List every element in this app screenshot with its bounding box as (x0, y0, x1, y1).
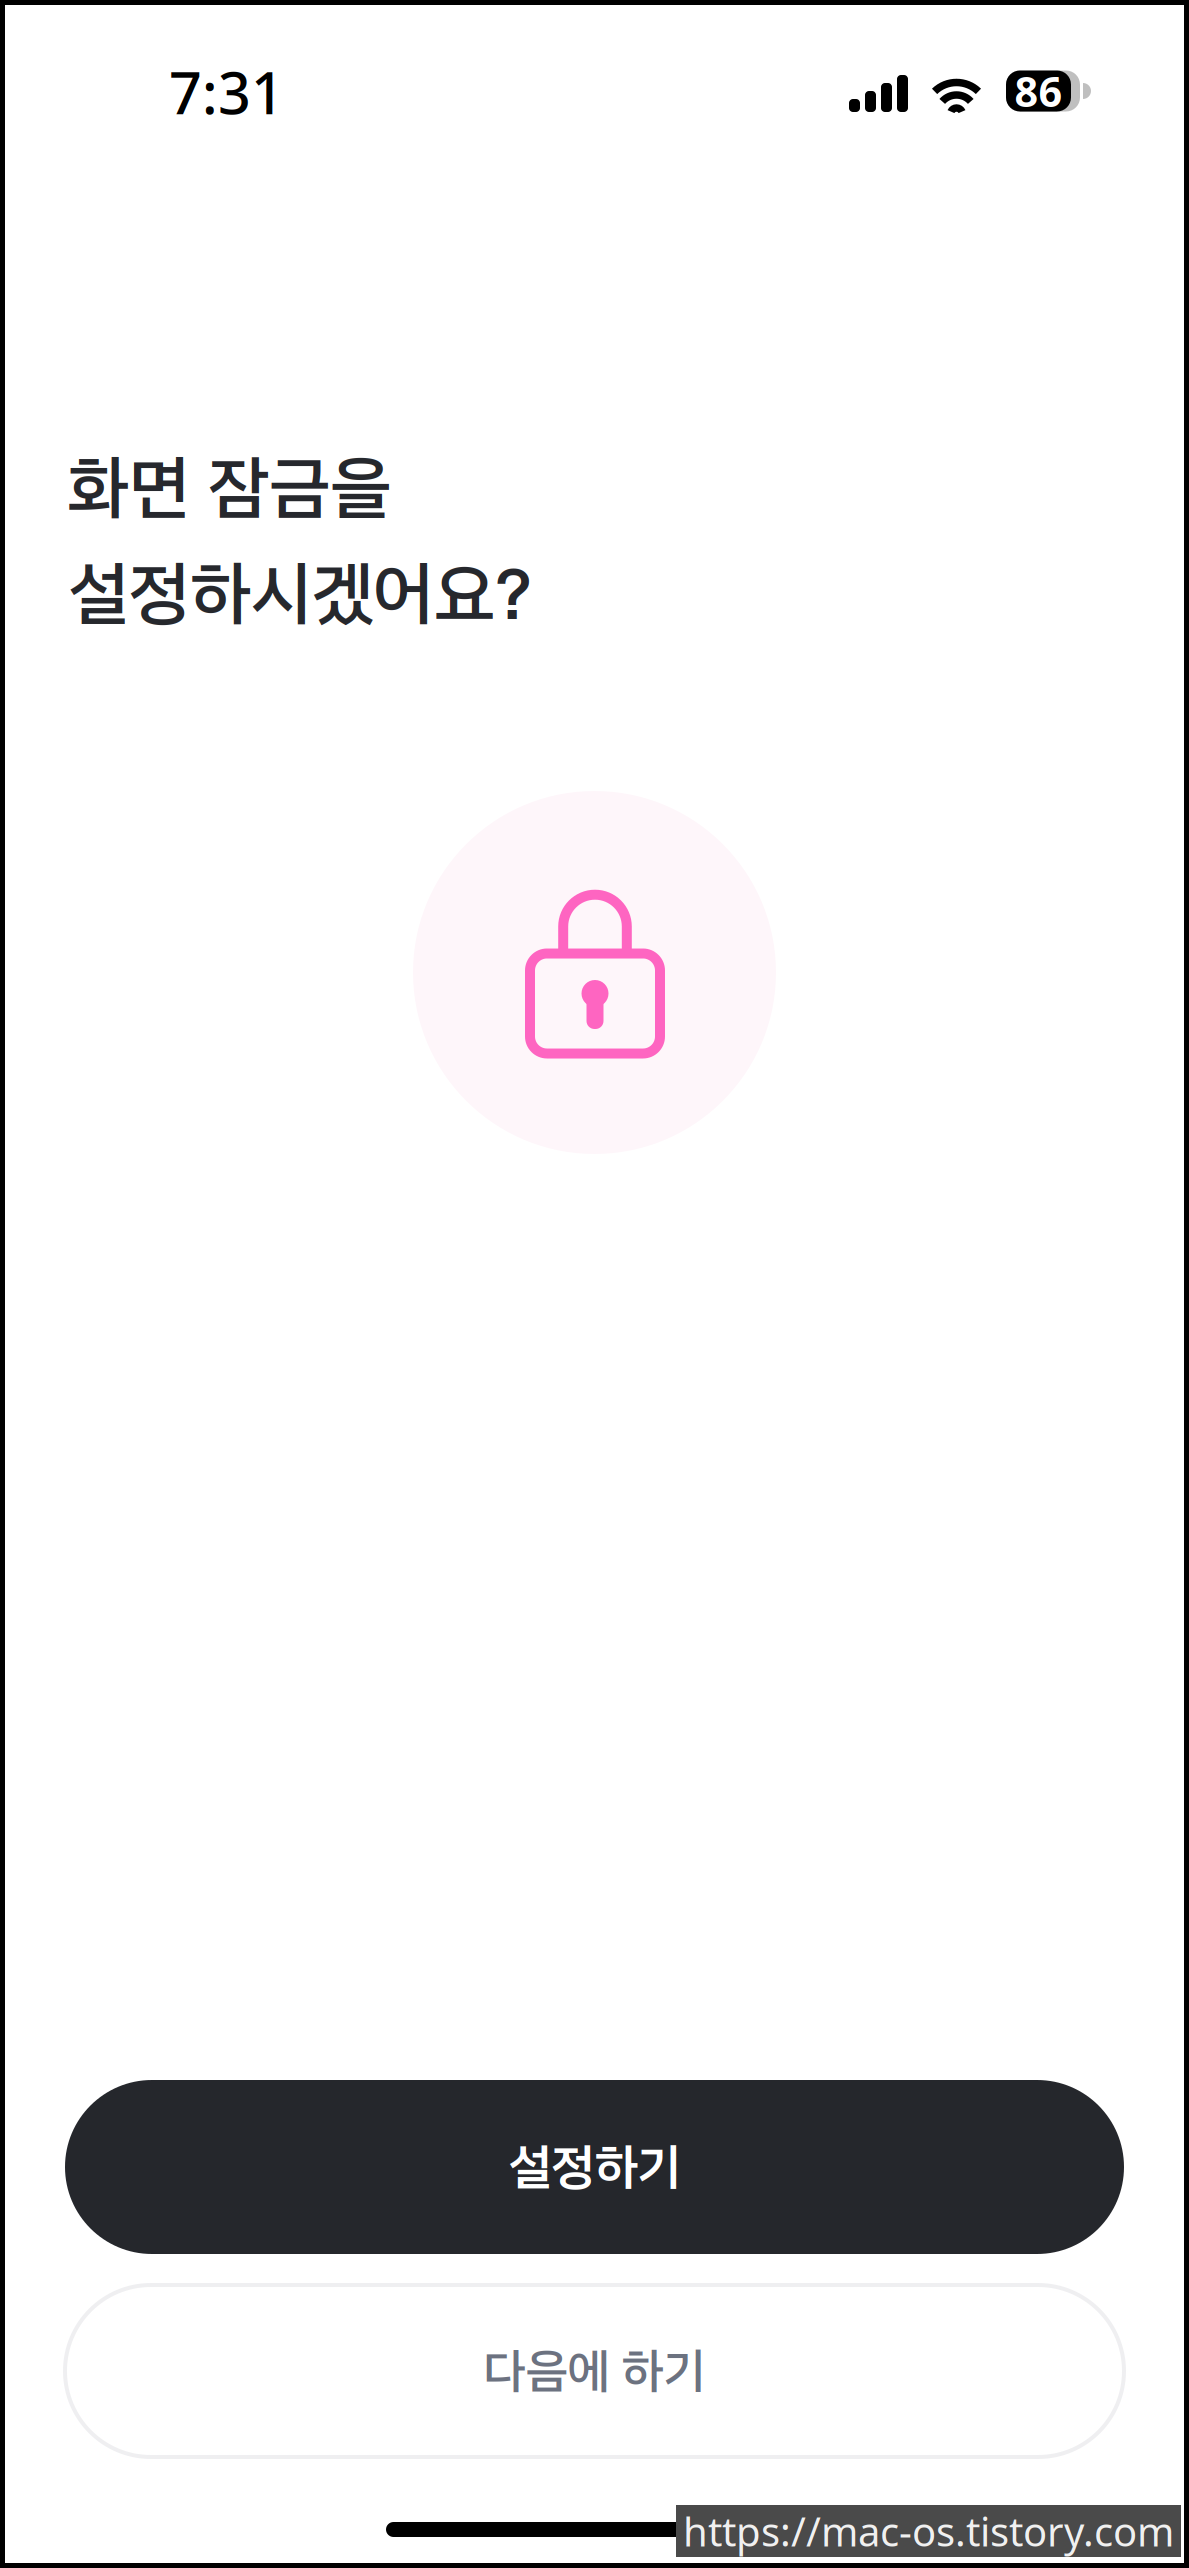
button[interactable]: 다음에 하기 (65, 2285, 1124, 2457)
staticText: 다음에 하기 (483, 2342, 705, 2400)
staticText: 화면 잠금을 (68, 445, 391, 530)
staticText: 7:31 (169, 54, 284, 130)
staticText: https://mac-os.tistory.com (683, 2504, 1174, 2557)
staticText: 설정하시겠어요? (68, 551, 532, 636)
staticText: 설정하기 (508, 2137, 680, 2197)
button[interactable]: 설정하기 (65, 2080, 1124, 2254)
staticText: 86 (1014, 64, 1062, 118)
